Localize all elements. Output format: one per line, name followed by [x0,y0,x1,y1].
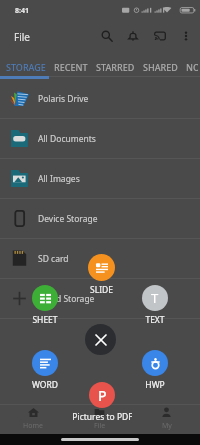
staticText: STARRED [96,61,135,73]
staticText: Device Storage [38,213,98,225]
button[interactable]: P [72,382,132,423]
button[interactable]: All Documents [0,119,200,158]
button[interactable]: Close menu [85,324,116,355]
staticText: P [98,386,107,405]
button[interactable]: HWP [125,350,185,391]
staticText: 8:41 [15,6,29,16]
button[interactable]: Polaris Drive [0,79,200,118]
button[interactable]: Cast [148,24,172,48]
staticText: Cloud Storage [38,293,95,305]
staticText: SD card [38,253,69,265]
staticText: TEXT [145,314,165,326]
button[interactable]: Home [0,404,66,434]
button[interactable]: SHEET [15,285,75,326]
button[interactable]: T [125,285,185,326]
staticText: HWP [145,379,165,391]
button[interactable]: STARRED [92,53,139,80]
button[interactable]: SHARED [139,53,182,80]
staticText: RECENT [54,61,88,73]
staticText: SLIDE [90,284,113,296]
staticText: Home [23,421,43,431]
staticText: SHARED [143,61,178,73]
button[interactable]: SD card [0,239,200,278]
staticText: Pictures to PDF [72,411,132,423]
staticText: WORD [32,379,58,391]
staticText: T [151,289,159,307]
button[interactable]: All Images [0,159,200,198]
staticText: SHEET [32,314,58,326]
staticText: File [94,421,106,431]
staticText: Polaris Drive [38,93,89,105]
button[interactable]: Device Storage [0,199,200,238]
staticText: File [14,30,30,44]
button[interactable]: WORD [15,350,75,391]
button[interactable]: NOTE [182,53,200,80]
button[interactable]: RECENT [50,53,92,80]
button[interactable]: File [66,404,133,434]
button[interactable]: Cloud Storage [0,279,200,318]
button[interactable]: Search [95,24,119,48]
button[interactable]: STORAGE [2,53,50,80]
staticText: All Images [38,173,80,185]
button[interactable]: SLIDE [71,254,131,296]
staticText: NOTE [186,61,198,73]
staticText: STORAGE [6,61,46,73]
staticText: My [162,421,172,431]
button[interactable]: More options [174,24,198,48]
button[interactable]: My [133,404,200,434]
button[interactable]: Notifications [121,24,145,48]
staticText: All Documents [38,133,96,145]
